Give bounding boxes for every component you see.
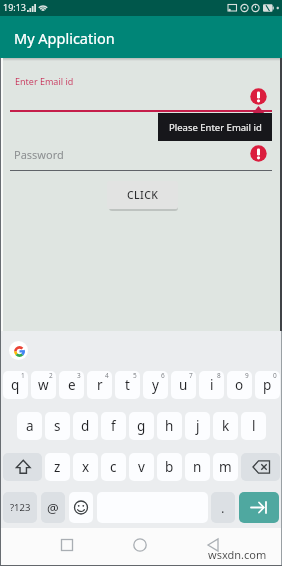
button[interactable]: p <box>255 371 280 399</box>
button[interactable]: n <box>185 453 210 481</box>
staticText: c <box>110 458 117 476</box>
staticText: d <box>81 417 90 435</box>
staticText: a <box>26 417 34 435</box>
button[interactable]: v <box>129 453 154 481</box>
staticText: h <box>165 417 174 435</box>
staticText: z <box>54 458 61 476</box>
button[interactable]: CLICK <box>107 181 178 209</box>
button[interactable]: r <box>87 371 112 399</box>
staticText: o <box>235 376 244 394</box>
button[interactable]: f <box>101 412 126 440</box>
staticText: x <box>82 458 90 476</box>
staticText: u <box>179 376 188 394</box>
staticText: g <box>137 417 146 435</box>
staticText: 2 <box>49 371 53 380</box>
button[interactable]: i <box>199 371 224 399</box>
button[interactable]: ?123 <box>3 492 37 523</box>
button[interactable]: x <box>73 453 98 481</box>
staticText: My Application <box>14 28 115 48</box>
staticText: y <box>152 376 159 394</box>
button[interactable] <box>56 534 78 556</box>
button[interactable]: c <box>101 453 126 481</box>
button[interactable] <box>69 492 93 523</box>
staticText: p <box>263 376 272 394</box>
button[interactable]: y <box>143 371 168 399</box>
button[interactable]: g <box>129 412 154 440</box>
button[interactable] <box>241 453 280 481</box>
button[interactable] <box>9 341 28 360</box>
staticText: i <box>210 376 214 394</box>
staticText: 3 <box>77 371 81 380</box>
staticText: @ <box>47 499 59 517</box>
button[interactable] <box>3 453 42 481</box>
staticText: r <box>97 376 103 394</box>
button[interactable]: o <box>227 371 252 399</box>
button[interactable]: b <box>157 453 182 481</box>
staticText: 6 <box>161 371 165 380</box>
staticText: l <box>252 417 256 435</box>
button[interactable]: a <box>17 412 42 440</box>
staticText: 19:13 <box>3 1 27 13</box>
staticText: v <box>138 458 145 476</box>
button[interactable]: @ <box>41 492 65 523</box>
staticText: 0 <box>273 371 277 380</box>
button[interactable]: u <box>171 371 196 399</box>
staticText: m <box>219 458 232 476</box>
staticText: 5 <box>133 371 137 380</box>
button[interactable] <box>239 492 279 523</box>
staticText: Please Enter Email id <box>169 121 262 134</box>
staticText: CLICK <box>127 188 159 202</box>
staticText: n <box>193 458 202 476</box>
button[interactable] <box>129 534 151 556</box>
button[interactable] <box>202 534 224 556</box>
button[interactable]: e <box>59 371 84 399</box>
button[interactable]: m <box>213 453 238 481</box>
staticText: wsxdn.com <box>208 547 267 562</box>
staticText: e <box>68 376 76 394</box>
button[interactable]: d <box>73 412 98 440</box>
button[interactable]: w <box>31 371 56 399</box>
button[interactable]: q <box>3 371 28 399</box>
staticText: b <box>165 458 174 476</box>
staticText: q <box>11 376 20 394</box>
staticText: w <box>38 376 49 394</box>
staticText: t <box>125 376 130 394</box>
button[interactable]: . <box>211 492 235 523</box>
staticText: k <box>222 417 230 435</box>
staticText: ?123 <box>10 501 31 514</box>
staticText: 9 <box>245 371 249 380</box>
staticText: 7 <box>189 371 193 380</box>
staticText: . <box>221 499 225 517</box>
button[interactable]: z <box>45 453 70 481</box>
button[interactable]: t <box>115 371 140 399</box>
staticText: s <box>54 417 61 435</box>
staticText: Enter Email id <box>15 75 74 87</box>
staticText: 1 <box>21 371 25 380</box>
staticText: 8 <box>217 371 221 380</box>
staticText: 4 <box>105 371 109 380</box>
button[interactable]: l <box>241 412 266 440</box>
staticText: Password <box>14 147 64 162</box>
button[interactable]: k <box>213 412 238 440</box>
button[interactable]: h <box>157 412 182 440</box>
button[interactable]: s <box>45 412 70 440</box>
staticText: f <box>111 417 116 435</box>
button[interactable]: j <box>185 412 210 440</box>
staticText: j <box>196 417 200 435</box>
